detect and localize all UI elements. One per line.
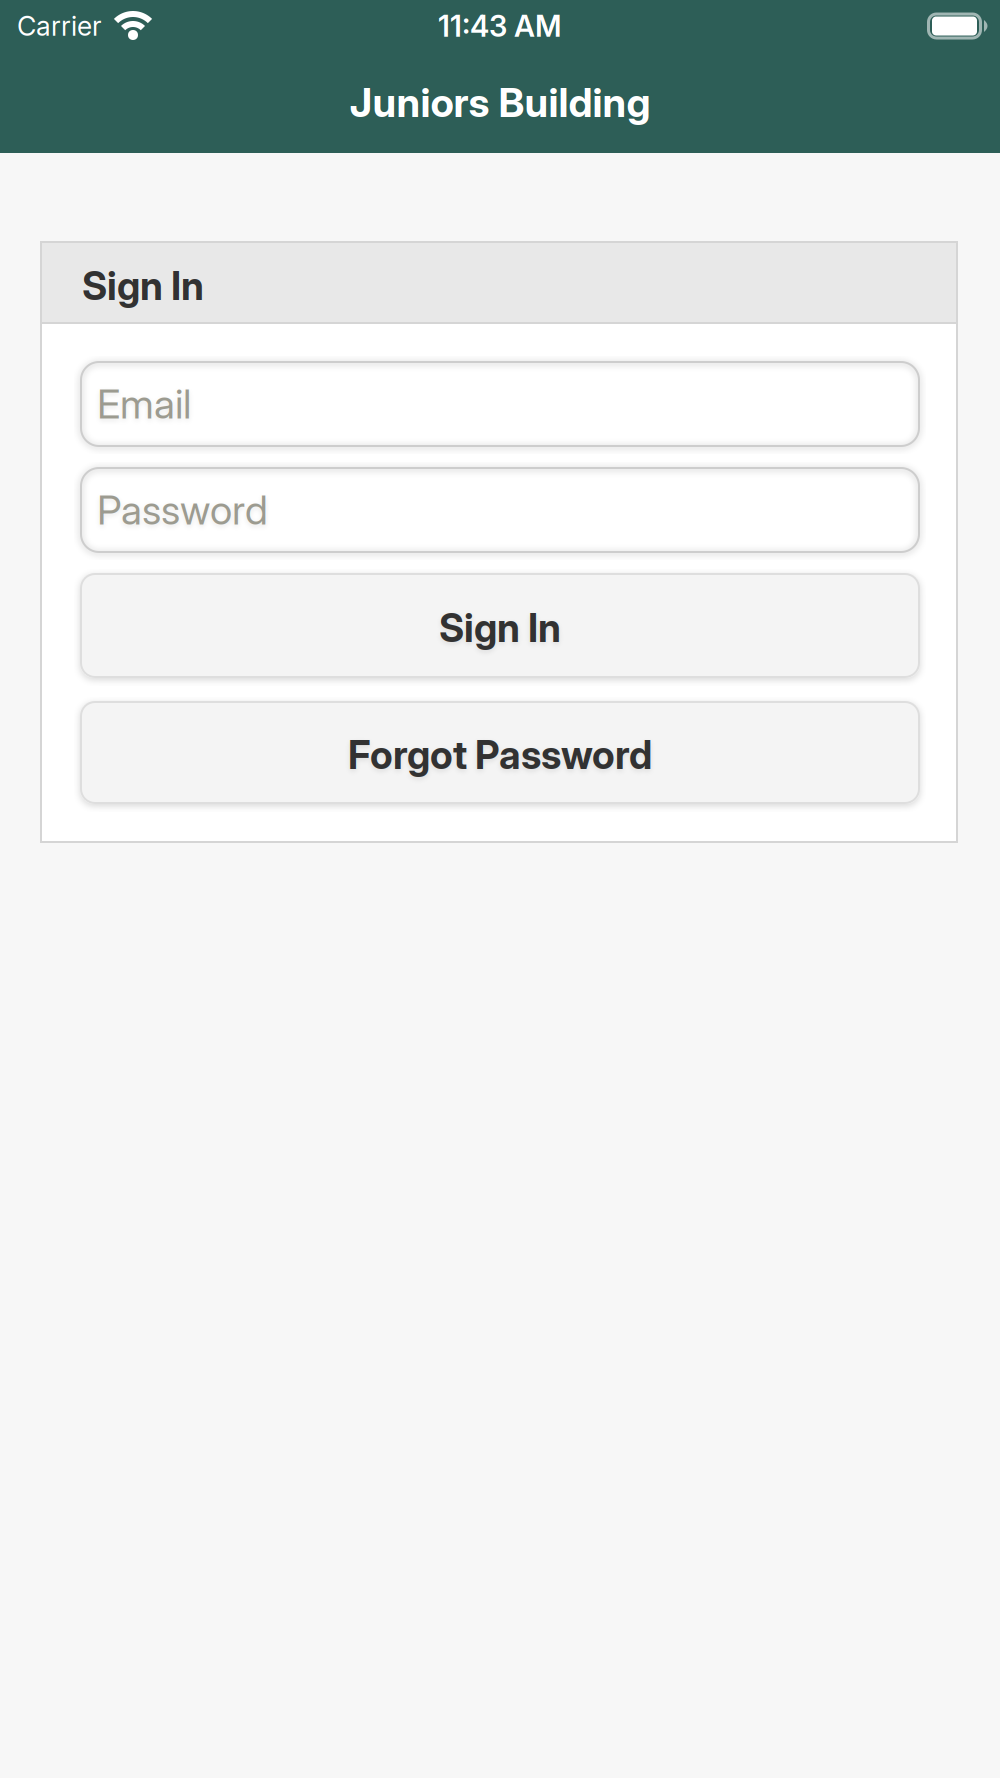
staticText: Sign In bbox=[439, 605, 561, 651]
staticText: Juniors Building bbox=[349, 79, 650, 126]
textField[interactable]: Email bbox=[97, 380, 903, 428]
button[interactable]: Forgot Password bbox=[80, 701, 920, 804]
staticText: 11:43 AM bbox=[438, 9, 562, 43]
staticText: Sign In bbox=[82, 263, 204, 309]
button[interactable]: Sign In bbox=[80, 573, 920, 678]
staticText: Carrier bbox=[17, 10, 102, 42]
staticText: Email bbox=[97, 380, 191, 428]
staticText: Password bbox=[97, 486, 268, 534]
staticText: Forgot Password bbox=[348, 732, 652, 778]
secureTextField[interactable]: Password bbox=[97, 486, 903, 534]
